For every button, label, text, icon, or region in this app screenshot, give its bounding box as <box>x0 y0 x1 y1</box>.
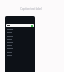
button[interactable] <box>6 24 34 27</box>
button[interactable] <box>5 38 35 41</box>
button[interactable] <box>5 35 35 38</box>
button[interactable] <box>5 47 35 50</box>
button[interactable] <box>5 28 35 31</box>
button[interactable] <box>5 44 35 47</box>
button[interactable] <box>5 51 35 54</box>
button[interactable] <box>5 41 35 44</box>
button[interactable] <box>5 54 35 57</box>
button[interactable] <box>5 31 35 34</box>
staticText: Caption text label <box>20 7 42 11</box>
